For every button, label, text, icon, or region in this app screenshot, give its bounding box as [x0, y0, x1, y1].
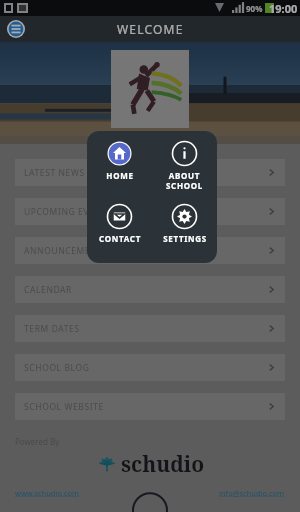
staticText: SCHOOL BLOG [24, 362, 90, 374]
staticText: HOME [106, 170, 134, 181]
button[interactable]: Open navigation menu [5, 18, 27, 40]
staticText: CALENDAR [24, 284, 72, 296]
staticText: schudio [121, 450, 205, 479]
button[interactable]: LATEST NEWS [15, 159, 285, 186]
button[interactable]: TERM DATES [15, 315, 285, 342]
staticText: WELCOME [117, 21, 184, 37]
button[interactable]: ANNOUNCEMENTS [15, 237, 285, 264]
staticText: TERM DATES [24, 323, 80, 335]
staticText: ANNOUNCEMENTS [24, 245, 108, 257]
staticText: CONTACT [99, 233, 141, 244]
button[interactable]: CONTACT [87, 200, 152, 263]
button[interactable]: info@schudio.com [219, 488, 285, 498]
staticText: ABOUT SCHOOL [166, 170, 203, 191]
button[interactable]: SETTINGS [152, 200, 217, 263]
button[interactable]: SCHOOL WEBSITE [15, 393, 285, 420]
staticText: Powered By [15, 436, 60, 447]
button[interactable]: HOME [87, 137, 152, 200]
staticText: 19:00 [269, 1, 298, 16]
staticText: SCHOOL WEBSITE [24, 401, 104, 413]
staticText: 90% [246, 3, 263, 14]
staticText: LATEST NEWS [24, 167, 85, 179]
button[interactable]: SCHOOL BLOG [15, 354, 285, 381]
staticText: UPCOMING EVENTS [24, 206, 113, 218]
staticText: SETTINGS [163, 233, 207, 244]
button[interactable]: UPCOMING EVENTS [15, 198, 285, 225]
button[interactable]: ABOUT SCHOOL [152, 137, 217, 200]
button[interactable]: www.schudio.com [15, 488, 80, 498]
